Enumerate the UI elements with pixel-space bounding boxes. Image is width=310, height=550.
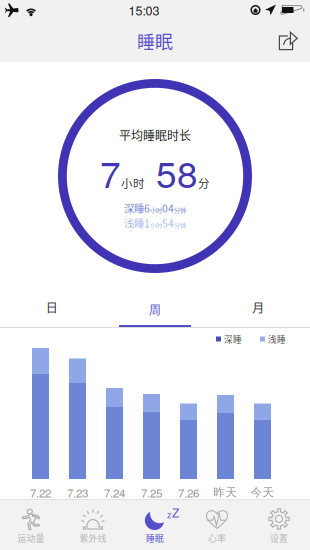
staticText: 运动量 [17, 531, 44, 544]
button[interactable]: 周 [103, 285, 207, 327]
staticText: 小时 [150, 220, 162, 229]
staticText: 7.25 [141, 484, 162, 501]
button[interactable]: 运动量 [0, 502, 62, 550]
button[interactable]: Share [270, 24, 305, 58]
button[interactable]: 月 [207, 285, 310, 327]
staticText: 浅睡1 [124, 215, 150, 231]
staticText: 日 [46, 299, 58, 316]
staticText: 分 [198, 175, 210, 191]
staticText: 04 [162, 200, 174, 216]
staticText: 周 [149, 301, 161, 318]
staticText: 睡眠 [137, 28, 173, 54]
staticText: 浅睡 [268, 333, 286, 345]
button[interactable]: 紫外线 [62, 502, 124, 550]
staticText: z [167, 508, 172, 521]
staticText: 7.22 [30, 484, 51, 501]
staticText: 58 [156, 145, 198, 198]
staticText: 小时 [121, 175, 145, 191]
staticText: 分钟 [174, 220, 186, 229]
staticText: 7.23 [67, 484, 88, 501]
staticText: 7.26 [178, 484, 199, 501]
staticText: 15:03 [128, 1, 159, 19]
staticText: Z [172, 504, 179, 521]
staticText: 平均睡眠时长 [119, 126, 191, 144]
staticText: 7.24 [104, 484, 125, 501]
staticText: 深睡6 [124, 200, 150, 216]
button[interactable]: 设置 [248, 502, 310, 550]
staticText: 心率 [208, 531, 226, 544]
staticText: 分钟 [174, 205, 186, 214]
button[interactable]: z [124, 502, 186, 550]
staticText: 54 [162, 215, 174, 231]
button[interactable]: 日 [0, 285, 103, 327]
staticText: 小时 [150, 205, 162, 214]
staticText: 睡眠 [146, 531, 164, 544]
staticText: 昨天 [213, 485, 237, 500]
staticText: 7 [100, 145, 121, 198]
staticText: 月 [252, 299, 264, 316]
button[interactable]: 心率 [186, 502, 248, 550]
staticText: 设置 [270, 531, 288, 544]
staticText: 紫外线 [79, 531, 106, 544]
staticText: 今天 [250, 485, 274, 500]
staticText: 深睡 [224, 333, 242, 345]
